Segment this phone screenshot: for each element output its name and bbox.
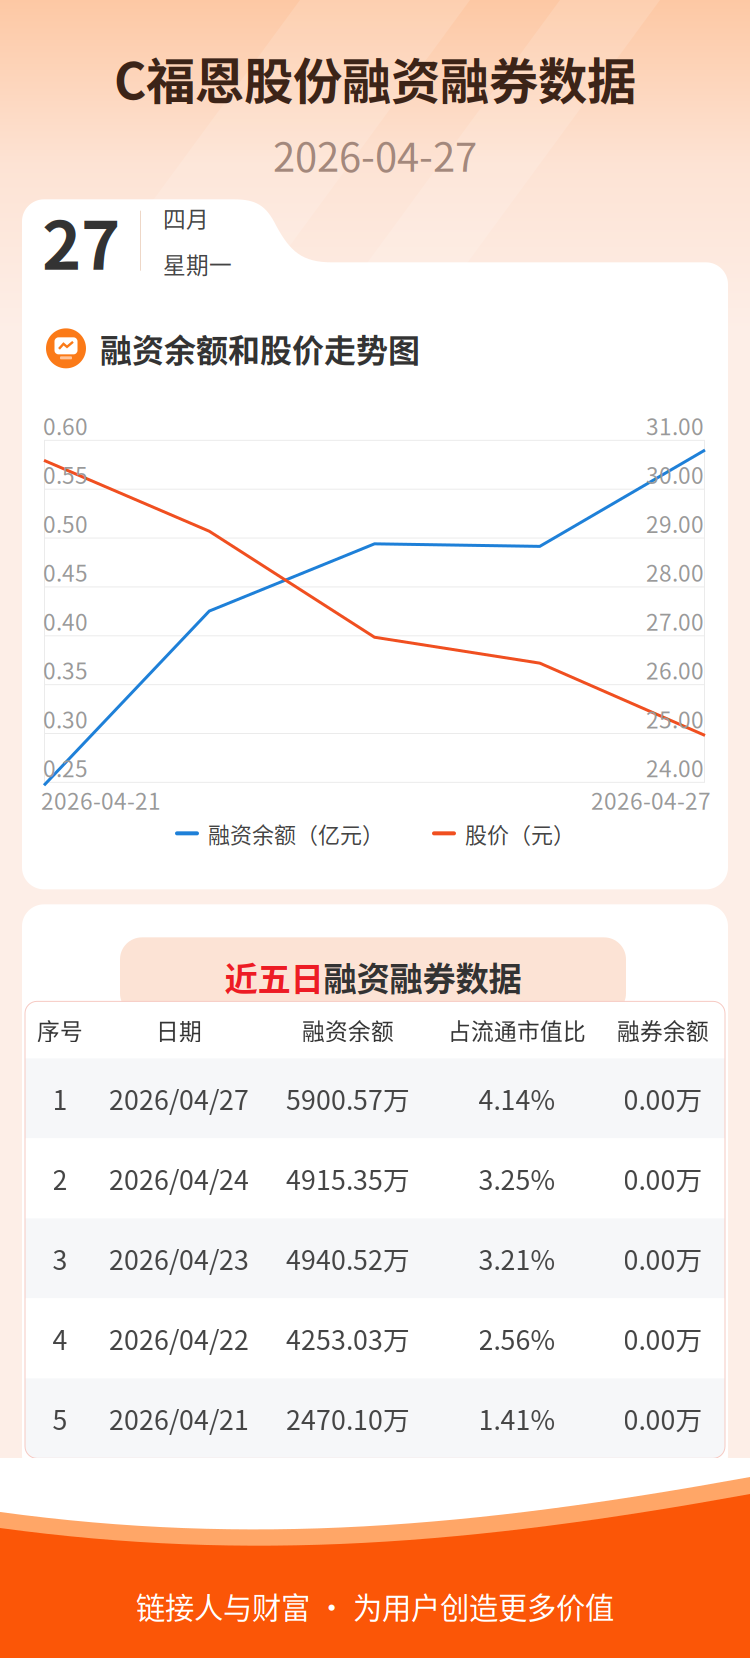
staticText: 0.55 — [43, 458, 88, 491]
staticText: 1 — [52, 1079, 67, 1118]
staticText: 日期 — [156, 1013, 202, 1046]
staticText: 0.35 — [43, 653, 88, 686]
staticText: 3.25% — [478, 1159, 555, 1198]
staticText: 0.25 — [43, 751, 88, 784]
staticText: 29.00 — [646, 507, 704, 539]
staticText: 27.00 — [646, 604, 704, 637]
staticText: 2026/04/22 — [109, 1319, 249, 1358]
staticText: 4 — [52, 1319, 67, 1358]
staticText: 2026-04-27 — [273, 125, 477, 183]
staticText: 2026/04/21 — [109, 1399, 249, 1438]
staticText: 0.60 — [43, 409, 88, 442]
staticText: 2026/04/27 — [109, 1079, 249, 1118]
staticText: 5 — [52, 1399, 67, 1438]
staticText: 2 — [52, 1159, 67, 1198]
staticText: 4940.52万 — [286, 1239, 410, 1278]
staticText: 25.00 — [646, 702, 704, 735]
staticText: 融资余额（亿元） — [208, 817, 384, 849]
staticText: 30.00 — [646, 458, 704, 491]
staticText: 0.00万 — [623, 1319, 702, 1358]
staticText: 4915.35万 — [286, 1159, 410, 1198]
staticText: C福恩股份融资融券数据 — [114, 42, 636, 113]
staticText: 24.00 — [646, 751, 704, 784]
staticText: 融券余额 — [617, 1013, 709, 1046]
staticText: 0.00万 — [623, 1239, 702, 1278]
staticText: 31.00 — [646, 409, 704, 442]
staticText: 0.45 — [43, 555, 88, 588]
staticText: 星期一 — [163, 247, 232, 280]
staticText: 2026-04-21 — [41, 783, 161, 816]
staticText: 融资余额 — [302, 1013, 394, 1046]
staticText: 28.00 — [646, 555, 704, 588]
staticText: 序号 — [37, 1013, 83, 1046]
staticText: 0.50 — [43, 507, 88, 539]
staticText: 3.21% — [478, 1239, 555, 1278]
staticText: 0.00万 — [623, 1079, 702, 1118]
staticText: 2026/04/24 — [109, 1159, 249, 1198]
staticText: 5900.57万 — [286, 1079, 410, 1118]
staticText: 链接人与财富 · 为用户创造更多价值 — [136, 1585, 614, 1627]
staticText: 四月 — [163, 201, 209, 234]
staticText: 0.00万 — [623, 1399, 702, 1438]
staticText: 4253.03万 — [286, 1319, 410, 1358]
staticText: 2470.10万 — [286, 1399, 410, 1438]
staticText: 0.00万 — [623, 1159, 702, 1198]
staticText: 2026/04/23 — [109, 1239, 249, 1278]
staticText: 4.14% — [478, 1079, 555, 1118]
staticText: 2.56% — [478, 1319, 555, 1358]
staticText: 占流通市值比 — [448, 1013, 586, 1046]
staticText: 0.40 — [43, 604, 88, 637]
staticText: 融资余额和股价走势图 — [100, 325, 420, 371]
staticText: 27 — [42, 192, 120, 289]
staticText: 股价（元） — [465, 817, 575, 849]
staticText: 1.41% — [478, 1399, 555, 1438]
staticText: 3 — [52, 1239, 67, 1278]
staticText: 近五日 — [224, 952, 323, 1000]
staticText: 2026-04-27 — [591, 783, 711, 816]
staticText: 0.30 — [43, 702, 88, 735]
staticText: 26.00 — [646, 653, 704, 686]
staticText: 融资融券数据 — [323, 952, 521, 1000]
